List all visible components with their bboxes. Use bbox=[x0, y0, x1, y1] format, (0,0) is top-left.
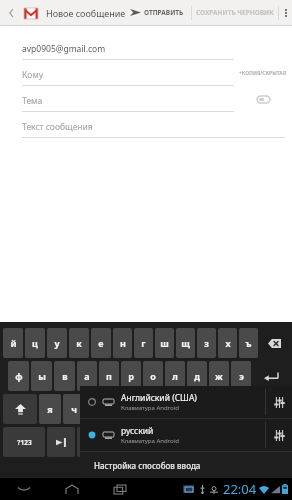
button[interactable]: ?123 bbox=[3, 427, 45, 457]
button[interactable] bbox=[115, 427, 219, 457]
button[interactable]: й bbox=[3, 328, 23, 358]
button[interactable]: п bbox=[99, 361, 119, 391]
button[interactable]: ш bbox=[155, 328, 174, 358]
staticText: русский bbox=[121, 425, 154, 437]
button[interactable]: Тема bbox=[22, 86, 234, 112]
button[interactable]: д bbox=[187, 361, 207, 391]
button[interactable]: Backspace bbox=[260, 328, 289, 358]
staticText: ч bbox=[71, 403, 77, 415]
button[interactable]: Home bbox=[48, 478, 96, 500]
button[interactable]: +КОПИЯ/СКРЫТАЯ bbox=[237, 68, 289, 79]
button[interactable]: л bbox=[165, 361, 185, 391]
staticText: э bbox=[239, 370, 244, 382]
button[interactable]: з bbox=[197, 328, 216, 358]
button[interactable]: х bbox=[218, 328, 237, 358]
staticText: Клавиатура Android bbox=[121, 437, 179, 445]
button[interactable]: Attach file bbox=[253, 89, 273, 109]
button[interactable]: у bbox=[47, 328, 67, 358]
button[interactable]: Английский (США) bbox=[80, 386, 292, 418]
staticText: Кому bbox=[22, 69, 44, 81]
button[interactable]: Back bbox=[0, 478, 48, 500]
button[interactable]: Emoji bbox=[251, 427, 289, 457]
staticText: и bbox=[143, 403, 150, 415]
button[interactable]: н bbox=[113, 328, 132, 358]
button[interactable]: я bbox=[39, 394, 61, 424]
button[interactable]: к bbox=[69, 328, 89, 358]
button[interactable]: Текст сообщения bbox=[22, 112, 288, 138]
staticText: у bbox=[54, 337, 60, 349]
staticText: avp0905@gmail.com bbox=[22, 43, 106, 55]
button[interactable]: Enter bbox=[253, 361, 289, 391]
button[interactable]: в bbox=[54, 361, 75, 391]
button[interactable]: ы bbox=[31, 361, 52, 391]
button[interactable]: .com bbox=[77, 427, 113, 457]
button[interactable]: русский bbox=[80, 419, 292, 451]
button[interactable]: . bbox=[221, 427, 249, 457]
button[interactable]: Recents bbox=[96, 478, 144, 500]
staticText: р bbox=[128, 370, 134, 382]
staticText: к bbox=[76, 337, 82, 349]
button[interactable]: о bbox=[143, 361, 163, 391]
staticText: д bbox=[194, 370, 200, 382]
button[interactable]: Settings bbox=[266, 386, 292, 418]
button[interactable]: ж bbox=[209, 361, 229, 391]
staticText: а bbox=[84, 370, 90, 382]
button[interactable]: avp0905@gmail.com bbox=[22, 34, 234, 60]
button[interactable]: т bbox=[159, 394, 181, 424]
staticText: л bbox=[172, 370, 178, 382]
staticText: Настройка способов ввода bbox=[94, 460, 201, 471]
staticText: .com bbox=[87, 438, 103, 447]
button[interactable]: Кому bbox=[22, 60, 234, 86]
button[interactable]: а bbox=[77, 361, 97, 391]
button[interactable]: Next field bbox=[47, 427, 75, 457]
button[interactable]: с bbox=[87, 394, 109, 424]
staticText: ш bbox=[160, 337, 169, 349]
button[interactable]: Gmail bbox=[22, 4, 40, 22]
button[interactable]: щ bbox=[176, 328, 195, 358]
staticText: н bbox=[120, 337, 126, 349]
staticText: ?123 bbox=[17, 438, 32, 447]
staticText: ж bbox=[215, 370, 223, 382]
button[interactable]: ц bbox=[25, 328, 45, 358]
staticText: з bbox=[204, 337, 209, 349]
staticText: ф bbox=[15, 370, 23, 382]
staticText: е bbox=[98, 337, 104, 349]
button[interactable]: ф bbox=[8, 361, 29, 391]
staticText: в bbox=[62, 370, 68, 382]
staticText: Английский (США) bbox=[121, 392, 197, 404]
button[interactable]: СОХРАНИТЬ ЧЕРНОВИК bbox=[192, 8, 278, 17]
button[interactable]: ь bbox=[183, 394, 205, 424]
button[interactable]: Back bbox=[2, 3, 22, 23]
button[interactable]: Delete bbox=[255, 394, 289, 424]
staticText: +КОПИЯ/СКРЫТАЯ bbox=[239, 70, 287, 77]
staticText: ц bbox=[32, 337, 38, 349]
button[interactable]: и bbox=[135, 394, 157, 424]
staticText: х bbox=[225, 337, 231, 349]
button[interactable]: Settings bbox=[266, 419, 292, 451]
button[interactable]: Shift bbox=[3, 394, 37, 424]
button[interactable]: м bbox=[111, 394, 133, 424]
staticText: т bbox=[168, 403, 173, 415]
button[interactable]: е bbox=[91, 328, 111, 358]
staticText: ъ bbox=[245, 337, 252, 349]
button[interactable]: ч bbox=[63, 394, 85, 424]
button[interactable]: э bbox=[231, 361, 251, 391]
staticText: Новое сообщение bbox=[46, 7, 126, 19]
staticText: щ bbox=[181, 337, 190, 349]
staticText: я bbox=[47, 403, 53, 415]
button[interactable]: ю bbox=[231, 394, 253, 424]
staticText: м bbox=[118, 403, 126, 415]
staticText: 22:04 bbox=[223, 480, 257, 498]
button[interactable]: ОТПРАВИТЬ bbox=[126, 7, 188, 18]
button[interactable]: Настройка способов ввода bbox=[80, 452, 292, 478]
button[interactable]: г bbox=[134, 328, 153, 358]
button[interactable]: р bbox=[121, 361, 141, 391]
button[interactable]: б bbox=[207, 394, 229, 424]
staticText: Клавиатура Android bbox=[121, 404, 179, 412]
button[interactable]: ъ bbox=[239, 328, 258, 358]
button[interactable]: More options bbox=[279, 0, 292, 25]
